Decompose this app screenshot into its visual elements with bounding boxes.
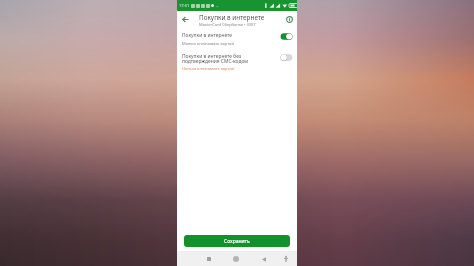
- button[interactable]: Home: [229, 252, 243, 266]
- button[interactable]: Сохранить: [184, 235, 290, 247]
- staticText: MasterCard Сбербанка • 3357: [199, 22, 256, 27]
- staticText: Нельзя оплачивать картой: [182, 66, 235, 71]
- button[interactable]: [280, 33, 293, 40]
- button[interactable]: Back: [257, 252, 271, 266]
- button[interactable]: Accessibility: [279, 252, 293, 266]
- staticText: Покупки в интернете без подтверждения СМ…: [182, 53, 249, 64]
- staticText: …: [216, 3, 220, 8]
- staticText: Покупки в интернете: [199, 13, 265, 22]
- staticText: 17:51: [179, 3, 190, 8]
- button[interactable]: Recent apps: [202, 252, 216, 266]
- staticText: Покупки в интернете: [182, 32, 232, 39]
- button[interactable]: [280, 54, 293, 61]
- staticText: Можно оплачивать картой: [182, 41, 234, 46]
- button[interactable]: Information: [281, 11, 297, 27]
- staticText: Сохранить: [224, 238, 250, 245]
- button[interactable]: Покупки в интернете без подтверждения СМ…: [177, 53, 297, 71]
- button[interactable]: Back: [177, 11, 193, 27]
- button[interactable]: Покупки в интернете: [177, 32, 297, 46]
